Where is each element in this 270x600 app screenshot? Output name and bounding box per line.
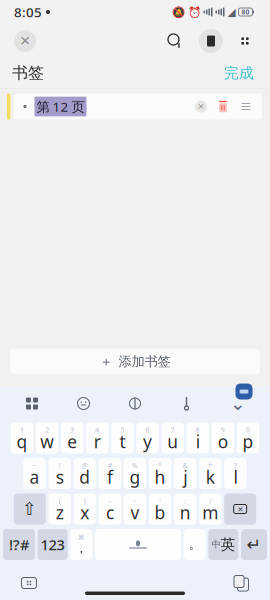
button[interactable]: 8 <box>186 422 209 453</box>
staticText: ↵ <box>246 535 261 554</box>
button[interactable]: & <box>174 458 196 489</box>
staticText: ⌄ <box>230 393 246 414</box>
staticText: # <box>108 461 112 470</box>
button[interactable]: ^ <box>149 458 171 489</box>
staticText: m <box>202 501 218 524</box>
staticText: 123 <box>41 535 65 554</box>
staticText: o <box>218 430 228 453</box>
staticText: ◢ <box>227 6 235 18</box>
button[interactable]: / <box>199 493 221 524</box>
staticText: !?# <box>9 535 29 554</box>
button[interactable]: Keyboard layouts <box>12 391 52 415</box>
button[interactable]: Clear text <box>190 93 212 119</box>
staticText: / <box>209 497 211 505</box>
button[interactable]: 1 <box>11 422 33 453</box>
button[interactable]: 完成 <box>220 60 258 86</box>
staticText: 2 <box>45 426 49 434</box>
staticText: % <box>132 461 138 470</box>
button[interactable]: ! <box>48 458 71 489</box>
button[interactable]: Delete <box>224 493 256 524</box>
staticText: ⌘ <box>78 534 85 541</box>
staticText: 第 12 页 <box>36 98 84 115</box>
button[interactable]: More <box>230 26 260 56</box>
button[interactable]: Reorder <box>234 93 258 119</box>
button[interactable]: - <box>99 493 121 524</box>
button[interactable]: ’ <box>149 493 171 524</box>
staticText: 80 <box>241 8 249 16</box>
button[interactable]: ＋ <box>10 348 260 374</box>
button[interactable]: 3 <box>61 422 83 453</box>
button[interactable]: Cut <box>166 391 206 415</box>
button[interactable]: ~ <box>23 458 46 489</box>
button[interactable]: Attachments <box>115 391 155 415</box>
staticText: · <box>134 497 136 505</box>
staticText: 3 <box>70 426 74 434</box>
button[interactable]: Delete bookmark <box>212 93 234 119</box>
staticText: ? <box>234 461 237 470</box>
button[interactable]: Close <box>10 26 40 56</box>
staticText: 添加书签 <box>118 353 170 370</box>
button[interactable]: 7 <box>161 422 184 453</box>
staticText: u <box>167 430 178 453</box>
staticText: s <box>56 465 64 488</box>
button[interactable]: · <box>124 493 146 524</box>
staticText: g <box>129 465 140 488</box>
staticText: x <box>80 501 89 524</box>
staticText: y <box>143 430 152 453</box>
button[interactable]: Hide keyboard <box>218 391 258 415</box>
button[interactable]: 5 <box>111 422 134 453</box>
staticText: 7 <box>171 426 175 434</box>
staticText: @ <box>82 461 88 470</box>
staticText: ^ <box>158 461 162 470</box>
button[interactable]: 4 <box>86 422 109 453</box>
staticText: w <box>40 430 54 453</box>
button[interactable]: Switch keyboard <box>14 571 44 595</box>
button[interactable]: ? <box>224 458 247 489</box>
staticText: 中 <box>211 539 220 550</box>
button[interactable]: 9 <box>212 422 234 453</box>
staticText: 书签 <box>12 63 44 83</box>
button[interactable]: Return <box>241 529 267 560</box>
staticText: ! <box>59 461 61 470</box>
staticText: 8:05 <box>14 3 42 21</box>
staticText: : <box>184 497 186 505</box>
staticText: p <box>242 430 253 453</box>
button[interactable]: @ <box>73 458 96 489</box>
staticText: 8 <box>196 426 200 434</box>
button[interactable]: Search <box>160 26 190 56</box>
button[interactable]: 2 <box>36 422 58 453</box>
staticText: ✕ <box>19 33 30 48</box>
button[interactable]: !?# <box>3 529 35 560</box>
button[interactable]: ) <box>73 493 96 524</box>
button[interactable]: Period <box>184 529 206 560</box>
button[interactable]: Space <box>95 529 181 560</box>
staticText: 4 <box>95 426 99 434</box>
staticText: r <box>94 430 101 453</box>
staticText: & <box>183 461 188 470</box>
staticText: 🔕 <box>171 6 184 18</box>
button[interactable]: % <box>124 458 146 489</box>
staticText: × <box>238 503 243 515</box>
button[interactable]: ( <box>48 493 71 524</box>
button[interactable]: Comma <box>70 529 92 560</box>
button[interactable]: Clipboard <box>226 571 256 595</box>
button[interactable]: 6 <box>136 422 159 453</box>
staticText: f <box>107 465 113 488</box>
staticText: - <box>109 497 111 505</box>
staticText: ⇧ <box>22 499 37 519</box>
button[interactable]: Shift <box>14 493 46 524</box>
button[interactable]: : <box>174 493 196 524</box>
button[interactable]: 0 <box>237 422 259 453</box>
staticText: 6 <box>146 426 150 434</box>
button[interactable]: Emoji <box>63 391 103 415</box>
button[interactable]: * <box>199 458 221 489</box>
staticText: j <box>183 465 187 488</box>
button[interactable]: # <box>99 458 121 489</box>
staticText: i <box>196 430 200 453</box>
button[interactable]: Bookmarks <box>196 26 226 56</box>
button[interactable]: 123 <box>38 529 68 560</box>
staticText: ⏰ <box>187 6 200 18</box>
staticText: h <box>155 465 166 488</box>
staticText: 完成 <box>224 64 254 82</box>
button[interactable]: Switch Chinese English <box>208 529 238 560</box>
